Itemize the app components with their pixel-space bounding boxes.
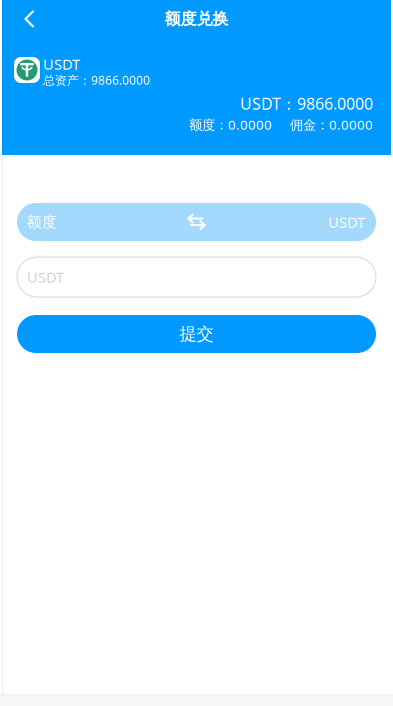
staticText: 额度兑换	[164, 9, 228, 29]
staticText: 额度：0.0000	[189, 116, 272, 133]
staticText: USDT	[328, 212, 365, 232]
button[interactable]: 提交	[17, 315, 376, 353]
staticText: 额度	[27, 213, 57, 231]
staticText: 总资产：9866.0000	[43, 72, 150, 88]
staticText: USDT：9866.0000	[240, 93, 373, 114]
staticText: USDT	[43, 54, 80, 74]
button[interactable]: Back	[2, 0, 51, 38]
staticText: USDT	[27, 267, 64, 287]
button[interactable]: 额度	[17, 203, 376, 241]
staticText: 提交	[179, 323, 213, 345]
staticText: 佣金：0.0000	[290, 116, 373, 133]
